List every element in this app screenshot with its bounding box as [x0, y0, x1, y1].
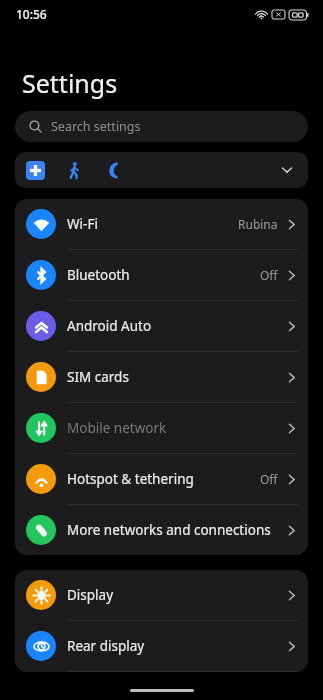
button[interactable]: Rear display	[15, 621, 308, 671]
staticText: Wi-Fi	[67, 215, 238, 233]
button[interactable]: Display	[15, 570, 308, 620]
staticText: Android Auto	[67, 317, 281, 335]
button[interactable]: Bluetooth	[15, 250, 308, 300]
button[interactable]: Activity	[63, 159, 85, 181]
staticText: Search settings	[51, 118, 141, 135]
staticText: Rear display	[67, 637, 281, 655]
staticText: Bluetooth	[67, 266, 260, 284]
staticText: Mobile network	[67, 419, 281, 437]
staticText: More networks and connections	[67, 521, 281, 539]
button[interactable]: SIM cards	[15, 352, 308, 402]
button[interactable]: More networks and connections	[15, 505, 308, 555]
staticText: Hotspot & tethering	[67, 470, 260, 488]
staticText: SIM cards	[67, 368, 281, 386]
button[interactable]: Emergency info	[26, 161, 45, 180]
staticText: Rubina	[238, 216, 278, 232]
staticText: Settings	[22, 66, 118, 100]
button[interactable]: Wi-Fi	[15, 199, 308, 249]
button[interactable]: Search settings	[15, 111, 308, 142]
button[interactable]: Android Auto	[15, 301, 308, 351]
button[interactable]: Hotspot & tethering	[15, 454, 308, 504]
button[interactable]: Do not disturb	[101, 159, 123, 181]
staticText: 10:56	[16, 6, 47, 22]
staticText: Display	[67, 586, 281, 604]
button[interactable]: Expand	[276, 159, 298, 181]
staticText: Off	[260, 267, 278, 283]
button[interactable]: Mobile network	[15, 403, 308, 453]
staticText: Off	[260, 471, 278, 487]
